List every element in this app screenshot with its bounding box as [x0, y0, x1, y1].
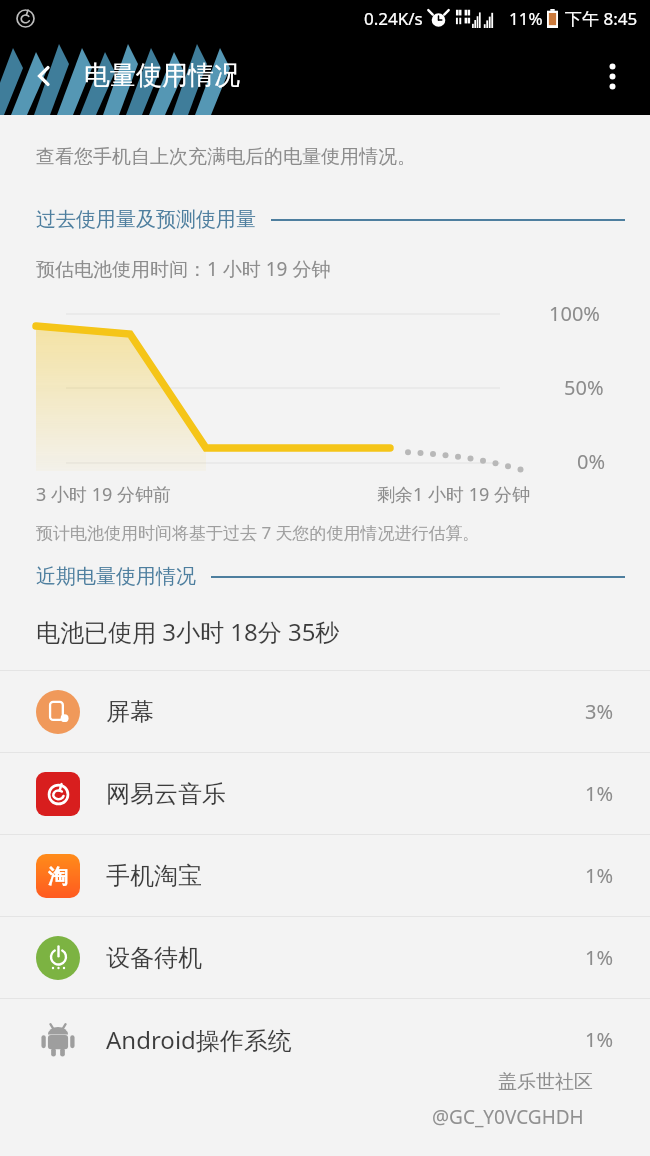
button[interactable]: 网易云音乐	[0, 753, 650, 834]
staticText: 3%	[585, 698, 614, 725]
staticText: 3 小时 19 分钟前	[36, 482, 171, 507]
staticText: 预计电池使用时间将基于过去 7 天您的使用情况进行估算。	[36, 521, 480, 544]
staticText: 0.24K/s	[364, 7, 423, 30]
button[interactable]: 设备待机	[0, 917, 650, 998]
button[interactable]: Android操作系统	[0, 999, 650, 1080]
staticText: 0%	[577, 448, 606, 475]
button[interactable]: 屏幕	[0, 671, 650, 752]
staticText: 屏幕	[106, 697, 154, 727]
staticText: 设备待机	[106, 943, 202, 973]
staticText: 近期电量使用情况	[36, 564, 196, 589]
staticText: Android操作系统	[106, 1023, 292, 1056]
staticText: 过去使用量及预测使用量	[36, 207, 256, 232]
staticText: 100%	[549, 300, 600, 327]
staticText: 1%	[585, 1026, 614, 1053]
staticText: 预估电池使用时间：1 小时 19 分钟	[36, 256, 331, 282]
staticText: 下午 8:45	[565, 7, 638, 30]
staticText: 剩余1 小时 19 分钟	[377, 482, 530, 507]
button[interactable]: Back	[20, 52, 68, 100]
staticText: 50%	[564, 374, 604, 401]
staticText: 1%	[585, 780, 614, 807]
staticText: 手机淘宝	[106, 861, 202, 891]
staticText: 电池已使用 3小时 18分 35秒	[36, 615, 340, 648]
staticText: 查看您手机自上次充满电后的电量使用情况。	[36, 145, 416, 169]
staticText: 盖乐世社区	[498, 1070, 593, 1094]
staticText: 网易云音乐	[106, 779, 226, 809]
button[interactable]: More options	[588, 52, 636, 100]
staticText: 1%	[585, 862, 614, 889]
staticText: 11%	[509, 7, 543, 30]
staticText: 淘	[48, 864, 68, 889]
button[interactable]: 淘	[0, 835, 650, 916]
staticText: 1%	[585, 944, 614, 971]
staticText: @GC_Y0VCGHDH	[432, 1104, 584, 1130]
staticText: 电量使用情况	[84, 59, 240, 92]
